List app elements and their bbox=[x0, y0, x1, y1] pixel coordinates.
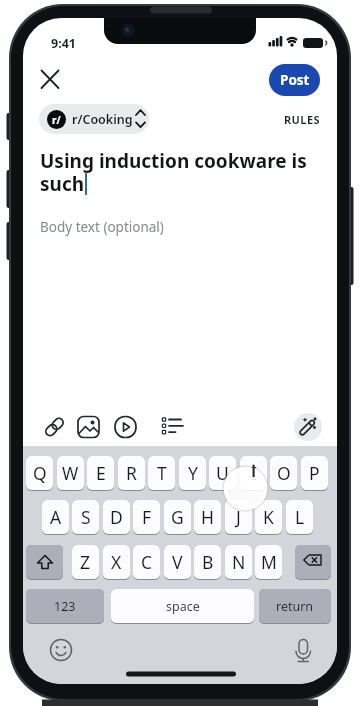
button[interactable]: X bbox=[103, 545, 130, 580]
button[interactable]: A bbox=[42, 500, 69, 535]
button[interactable]: 123 bbox=[26, 589, 104, 624]
button[interactable]: L bbox=[286, 500, 313, 535]
button[interactable]: r/ bbox=[39, 104, 149, 134]
button[interactable] bbox=[289, 636, 317, 664]
button[interactable]: S bbox=[72, 500, 99, 535]
button[interactable]: M bbox=[255, 545, 282, 580]
staticText: V bbox=[172, 550, 183, 574]
button[interactable]: Q bbox=[26, 456, 53, 491]
staticText: 9:41 bbox=[51, 35, 76, 52]
button[interactable]: U bbox=[209, 456, 236, 491]
button[interactable] bbox=[295, 545, 331, 580]
button[interactable]: Y bbox=[179, 456, 206, 491]
button[interactable]: P bbox=[301, 456, 328, 491]
staticText: Body text (optional) bbox=[40, 218, 164, 236]
staticText: I bbox=[251, 461, 257, 485]
button[interactable]: I bbox=[240, 456, 267, 491]
staticText: J bbox=[236, 505, 241, 529]
button[interactable] bbox=[39, 412, 70, 442]
button[interactable] bbox=[294, 413, 322, 441]
staticText: return bbox=[276, 598, 314, 615]
staticText: E bbox=[96, 461, 106, 485]
button[interactable]: E bbox=[87, 456, 114, 491]
button[interactable]: C bbox=[133, 545, 160, 580]
button[interactable]: T bbox=[148, 456, 175, 491]
staticText: U bbox=[216, 461, 229, 485]
staticText: M bbox=[261, 550, 277, 574]
button[interactable] bbox=[34, 63, 66, 95]
staticText: S bbox=[81, 505, 91, 529]
staticText: W bbox=[62, 461, 79, 485]
button[interactable]: G bbox=[164, 500, 191, 535]
button[interactable]: Post bbox=[269, 64, 320, 96]
button[interactable]: B bbox=[194, 545, 221, 580]
staticText: D bbox=[110, 505, 123, 529]
button[interactable] bbox=[154, 412, 186, 442]
button[interactable]: J bbox=[225, 500, 252, 535]
staticText: RULES bbox=[284, 112, 320, 127]
button[interactable] bbox=[26, 545, 63, 580]
staticText: N bbox=[232, 550, 246, 574]
button[interactable] bbox=[110, 412, 141, 442]
staticText: K bbox=[263, 505, 274, 529]
staticText: Q bbox=[33, 461, 47, 485]
staticText: r/ bbox=[52, 113, 61, 127]
button[interactable] bbox=[47, 636, 75, 664]
button[interactable]: return bbox=[259, 589, 331, 624]
staticText: A bbox=[50, 505, 62, 529]
staticText: P bbox=[309, 461, 320, 485]
button[interactable]: H bbox=[194, 500, 221, 535]
button[interactable]: Z bbox=[72, 545, 99, 580]
button[interactable]: N bbox=[225, 545, 252, 580]
staticText: Post bbox=[280, 71, 310, 89]
button[interactable]: F bbox=[133, 500, 160, 535]
staticText: Z bbox=[80, 550, 91, 574]
button[interactable]: R bbox=[118, 456, 145, 491]
staticText: R bbox=[126, 461, 137, 485]
button[interactable]: W bbox=[57, 456, 84, 491]
button[interactable]: space bbox=[111, 589, 254, 624]
staticText: O bbox=[277, 461, 291, 485]
button[interactable]: O bbox=[270, 456, 297, 491]
staticText: H bbox=[201, 505, 214, 529]
staticText: G bbox=[171, 505, 184, 529]
staticText: Y bbox=[188, 461, 198, 485]
button[interactable]: RULES bbox=[268, 104, 320, 134]
button[interactable]: K bbox=[255, 500, 282, 535]
button[interactable]: D bbox=[103, 500, 130, 535]
button[interactable] bbox=[73, 412, 104, 442]
staticText: Using induction cookware is such bbox=[40, 148, 307, 196]
staticText: space bbox=[166, 598, 200, 615]
staticText: C bbox=[141, 550, 153, 574]
staticText: 123 bbox=[54, 598, 76, 615]
button[interactable]: V bbox=[164, 545, 191, 580]
staticText: L bbox=[295, 505, 305, 529]
staticText: T bbox=[157, 461, 167, 485]
staticText: B bbox=[202, 550, 214, 574]
staticText: X bbox=[111, 550, 122, 574]
staticText: r/Cooking bbox=[72, 111, 133, 128]
staticText: F bbox=[142, 505, 152, 529]
